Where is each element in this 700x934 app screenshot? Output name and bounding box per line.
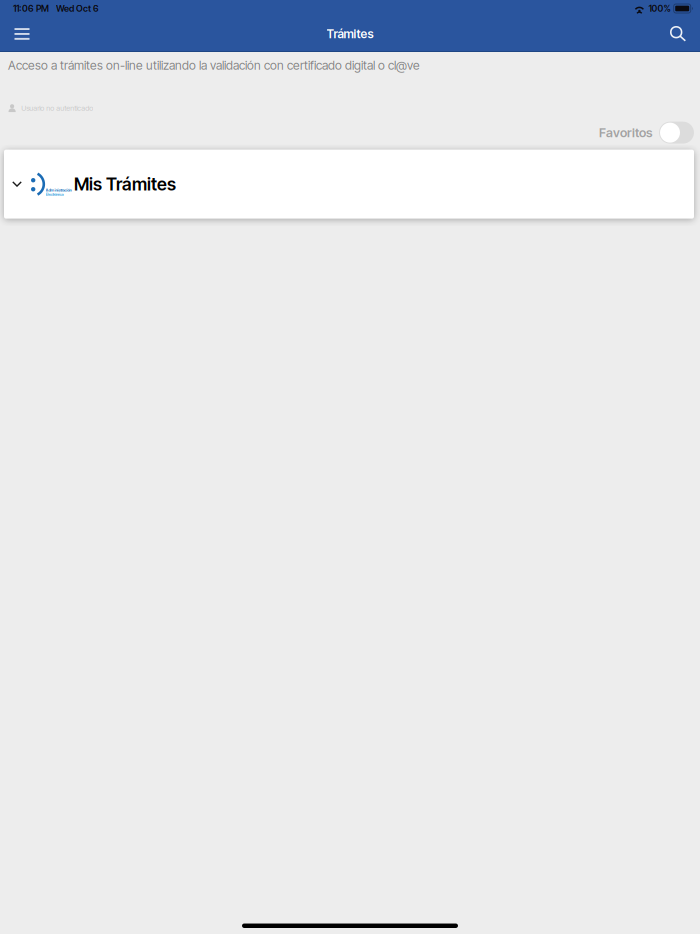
staticText: Trámites <box>326 27 373 41</box>
staticText: Wed Oct 6 <box>56 3 99 14</box>
button[interactable]: Search <box>658 17 698 51</box>
staticText: Mis Trámites <box>74 173 176 195</box>
staticText: 11:06 PM <box>13 3 49 14</box>
staticText: Usuario no autenticado <box>21 104 93 113</box>
staticText: Administración <box>45 187 71 192</box>
staticText: 100% <box>648 3 670 14</box>
staticText: Favoritos <box>599 125 652 140</box>
button[interactable]: Menu <box>0 17 44 51</box>
staticText: Electrónica <box>45 192 63 197</box>
button[interactable]: Administración <box>4 150 694 219</box>
button[interactable]: Favoritos <box>599 122 694 144</box>
staticText: Acceso a trámites on-line utilizando la … <box>8 58 420 73</box>
